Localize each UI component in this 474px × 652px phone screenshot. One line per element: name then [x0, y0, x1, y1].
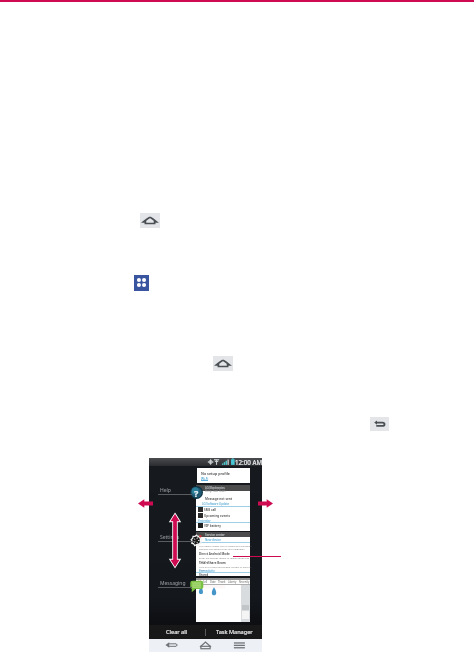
- button[interactable]: Settings app: [191, 535, 202, 546]
- staticText: Task Manager: [216, 628, 253, 636]
- staticText: Direct Android Mode: [199, 552, 230, 556]
- button[interactable]: LG Electronics: [196, 485, 250, 531]
- staticText: Service center: [205, 533, 225, 537]
- staticText: Upcoming events: [204, 514, 231, 518]
- staticText: Date: [210, 580, 216, 584]
- staticText: Help: [160, 487, 171, 494]
- button[interactable]: Clear all: [149, 625, 205, 639]
- staticText: LG Software Update: [202, 502, 230, 506]
- staticText: VIP battery: [204, 524, 221, 528]
- staticText: Recently: [239, 580, 250, 584]
- staticText: settings and details from your neighbors: [199, 547, 245, 550]
- button[interactable]: Messaging app: [190, 579, 204, 593]
- button[interactable]: Task Manager: [206, 625, 262, 639]
- staticText: Shared: [199, 573, 209, 577]
- button[interactable]: Back: [370, 417, 389, 431]
- staticText: All: [198, 580, 201, 584]
- staticText: Messaging: [160, 580, 186, 587]
- staticText: SMS call: [204, 508, 217, 512]
- button[interactable]: Service center: [196, 532, 250, 576]
- staticText: This option allows you to restore and co…: [199, 544, 252, 547]
- button[interactable]: No setup profile: [197, 468, 250, 483]
- staticText: New device: [205, 538, 221, 542]
- staticText: SmartShare Beam: [199, 561, 226, 565]
- staticText: Connectivity: [199, 569, 215, 573]
- staticText: Settings: [160, 534, 180, 541]
- button[interactable]: Help app: [190, 486, 203, 499]
- staticText: LG Electronics: [205, 486, 225, 490]
- button[interactable]: Home: [213, 356, 233, 371]
- staticText: Message not sent: [205, 497, 233, 501]
- staticText: Liberty: [228, 580, 237, 584]
- staticText: ?: [194, 487, 199, 499]
- staticText: Wi-Fi: [201, 477, 209, 481]
- staticText: Turn on to send and receive content or s…: [199, 565, 253, 571]
- staticText: Enter the specific region to remain when…: [199, 556, 253, 562]
- staticText: Sell: [203, 580, 208, 584]
- button[interactable]: All: [196, 578, 250, 622]
- staticText: 12:00 AM: [235, 458, 262, 466]
- button[interactable]: Apps: [134, 275, 149, 291]
- staticText: Yesterday: [198, 519, 211, 523]
- staticText: No setup profile: [201, 471, 230, 476]
- button[interactable]: Home: [140, 213, 160, 228]
- staticText: Clear all: [166, 628, 188, 636]
- staticText: Help Tool Start: [205, 489, 226, 493]
- staticText: Thank: [218, 580, 226, 584]
